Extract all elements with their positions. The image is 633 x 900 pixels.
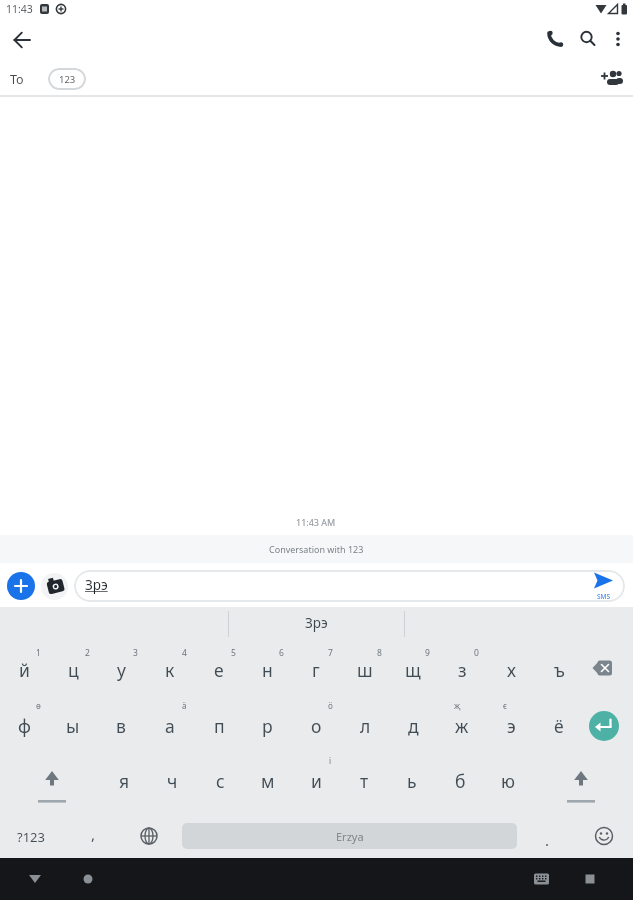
staticText: о [311, 714, 322, 738]
button[interactable]: и [256, 761, 376, 801]
staticText: 5 [231, 647, 236, 659]
button[interactable] [572, 861, 608, 897]
button[interactable] [570, 22, 606, 58]
staticText: а [165, 714, 175, 738]
staticText: г [312, 658, 320, 682]
button[interactable] [587, 819, 621, 853]
button[interactable] [30, 759, 74, 803]
button[interactable]: я [64, 761, 184, 801]
staticText: To [10, 71, 24, 88]
button[interactable]: э [451, 706, 571, 746]
button[interactable]: п [159, 706, 279, 746]
staticText: 3 [133, 647, 138, 659]
staticText: Зрэ [85, 576, 108, 594]
staticText: н [262, 658, 273, 682]
button[interactable] [17, 861, 53, 897]
button[interactable]: н [207, 650, 327, 690]
staticText: 1 [36, 647, 41, 659]
button[interactable]: ф [0, 706, 84, 746]
button[interactable] [523, 861, 559, 897]
staticText: ӧ [328, 700, 333, 711]
button[interactable]: в [61, 706, 181, 746]
staticText: к [165, 658, 175, 682]
button[interactable]: ц [13, 650, 133, 690]
button[interactable]: ш [305, 650, 425, 690]
staticText: щ [405, 658, 421, 682]
staticText: 9 [425, 647, 430, 659]
button[interactable]: е [159, 650, 279, 690]
staticText: т [360, 769, 369, 793]
button[interactable]: Erzya [182, 823, 517, 849]
staticText: ъ [554, 658, 565, 682]
button[interactable]: л [305, 706, 425, 746]
button[interactable] [589, 711, 619, 741]
button[interactable]: ы [13, 706, 133, 746]
button[interactable]: ь [352, 761, 472, 801]
button[interactable]: т [304, 761, 424, 801]
button[interactable]: ?123 [0, 817, 91, 857]
button[interactable]: й [0, 650, 84, 690]
staticText: 11:43 AM [296, 516, 336, 528]
button[interactable]: д [353, 706, 473, 746]
button[interactable]: с [160, 761, 280, 801]
staticText: е [214, 658, 224, 682]
staticText: б [455, 769, 466, 793]
button[interactable] [536, 22, 572, 58]
button[interactable]: щ [353, 650, 473, 690]
button[interactable] [7, 572, 35, 600]
button[interactable] [41, 573, 68, 600]
button[interactable]: ё [499, 706, 619, 746]
staticText: ь [407, 769, 417, 793]
staticText: ф [18, 714, 31, 738]
button[interactable]: р [207, 706, 327, 746]
staticText: с [216, 769, 225, 793]
button[interactable]: ж [402, 706, 522, 746]
staticText: э [507, 714, 516, 738]
staticText: з [458, 658, 467, 682]
button[interactable]: з [402, 650, 522, 690]
button[interactable]: 123 [48, 68, 86, 90]
staticText: Erzya [336, 829, 364, 844]
button[interactable] [579, 646, 623, 690]
staticText: и [311, 769, 322, 793]
staticText: і [329, 755, 332, 766]
button[interactable]: ч [112, 761, 232, 801]
button[interactable]: о [256, 706, 376, 746]
button[interactable]: у [61, 650, 181, 690]
staticText: 0 [474, 647, 479, 659]
staticText: җ [454, 700, 461, 711]
button[interactable]: м [208, 761, 328, 801]
button[interactable]: х [451, 650, 571, 690]
button[interactable] [593, 63, 629, 95]
staticText: . [545, 830, 550, 850]
button[interactable] [70, 861, 106, 897]
staticText: 8 [377, 647, 382, 659]
staticText: ц [68, 658, 79, 682]
button[interactable]: ю [448, 761, 568, 801]
button[interactable]: г [256, 650, 376, 690]
staticText: 4 [182, 647, 187, 659]
staticText: 7 [328, 647, 333, 659]
staticText: ч [167, 769, 178, 793]
staticText: ?123 [17, 828, 45, 846]
button[interactable] [132, 819, 166, 853]
button[interactable] [587, 569, 621, 601]
button[interactable]: . [487, 820, 607, 860]
button[interactable]: ъ [499, 650, 619, 690]
staticText: м [261, 769, 275, 793]
staticText: ө [36, 700, 41, 711]
staticText: л [360, 714, 371, 738]
button[interactable] [603, 22, 633, 58]
staticText: х [507, 658, 516, 682]
button[interactable]: , [33, 814, 153, 854]
button[interactable]: а [110, 706, 230, 746]
button[interactable] [559, 759, 603, 803]
button[interactable] [4, 22, 40, 58]
staticText: ы [66, 714, 80, 738]
staticText: , [91, 824, 96, 844]
button[interactable] [74, 570, 625, 602]
button[interactable]: к [110, 650, 230, 690]
button[interactable]: б [400, 761, 520, 801]
button[interactable]: Зрэ [256, 603, 376, 643]
staticText: ӓ [182, 700, 187, 711]
